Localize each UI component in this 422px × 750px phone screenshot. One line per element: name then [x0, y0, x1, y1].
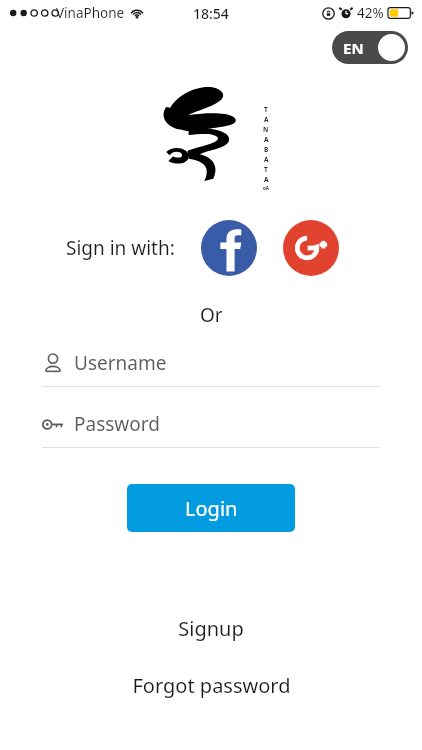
staticText: oA: [263, 185, 269, 191]
button[interactable]: Signup: [0, 615, 422, 642]
button[interactable]: Login: [127, 484, 295, 532]
button[interactable]: Language EN: [332, 31, 408, 64]
button[interactable]: Sign in with Facebook: [201, 220, 257, 276]
staticText: B: [264, 145, 269, 154]
staticText: Or: [200, 302, 223, 328]
staticText: Login: [185, 495, 238, 522]
staticText: T: [264, 105, 268, 114]
staticText: A: [264, 155, 269, 164]
button[interactable]: Password: [42, 411, 380, 448]
button[interactable]: Forgot password: [0, 672, 422, 699]
staticText: A: [264, 135, 269, 144]
staticText: VinaPhone: [56, 4, 125, 22]
staticText: EN: [343, 38, 364, 58]
staticText: 18:54: [193, 4, 229, 23]
staticText: Forgot password: [132, 672, 291, 699]
staticText: N: [263, 125, 269, 134]
staticText: A: [264, 115, 269, 124]
staticText: Password: [74, 411, 160, 437]
staticText: A: [264, 175, 269, 184]
staticText: Signup: [178, 615, 244, 642]
staticText: T: [264, 165, 268, 174]
button[interactable]: Sign in with Google Plus: [283, 220, 339, 276]
staticText: Sign in with:: [66, 235, 175, 261]
staticText: Username: [74, 350, 167, 376]
button[interactable]: Username: [42, 350, 380, 387]
staticText: 42%: [357, 4, 384, 22]
